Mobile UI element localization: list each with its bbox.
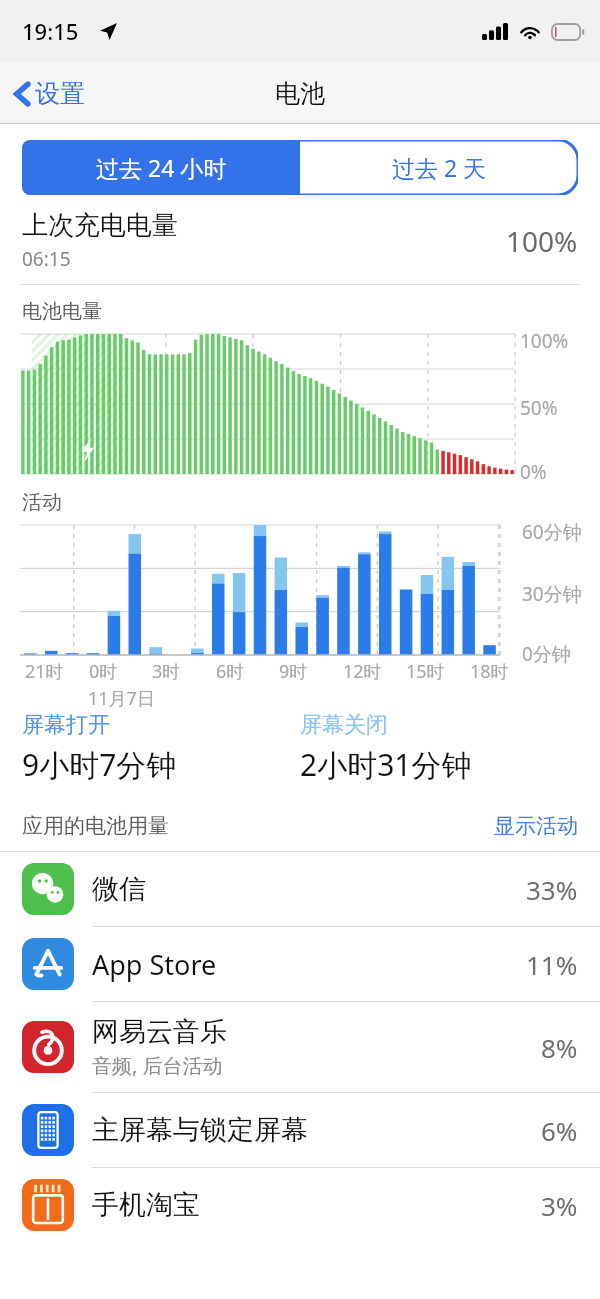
staticText: 9时 bbox=[279, 659, 308, 684]
staticText: 应用的电池用量 bbox=[22, 813, 494, 839]
staticText: 12时 bbox=[343, 659, 382, 684]
staticText: 18时 bbox=[470, 659, 509, 684]
staticText: 11月7日 bbox=[88, 686, 155, 711]
staticText: 9小时7分钟 bbox=[22, 744, 177, 785]
other: WeChat bbox=[22, 863, 74, 915]
staticText: 100% bbox=[506, 222, 578, 260]
staticText: 设置 bbox=[35, 78, 85, 109]
staticText: 3时 bbox=[152, 659, 181, 684]
staticText: 6时 bbox=[216, 659, 245, 684]
staticText: 0时 bbox=[89, 659, 118, 684]
button[interactable]: 过去 2 天 bbox=[300, 140, 578, 195]
staticText: 上次充电电量 bbox=[22, 209, 178, 242]
button[interactable]: Taobao bbox=[0, 1168, 600, 1242]
button[interactable]: 过去 24 小时 bbox=[22, 140, 300, 195]
staticText: App Store bbox=[92, 946, 217, 983]
staticText: 11% bbox=[526, 947, 578, 982]
staticText: 电池电量 bbox=[22, 299, 102, 324]
button[interactable]: Home and Lock Screen bbox=[0, 1093, 600, 1167]
other: Home and Lock Screen bbox=[22, 1104, 74, 1156]
staticText: 网易云音乐 bbox=[92, 1015, 227, 1049]
staticText: 3% bbox=[541, 1188, 578, 1223]
staticText: 0分钟 bbox=[522, 641, 571, 667]
staticText: 主屏幕与锁定屏幕 bbox=[92, 1113, 308, 1147]
staticText: 音频, 后台活动 bbox=[92, 1052, 223, 1079]
staticText: 活动 bbox=[22, 490, 62, 515]
staticText: 33% bbox=[526, 872, 578, 907]
other: NetEase Music bbox=[22, 1021, 74, 1073]
staticText: 50% bbox=[520, 395, 558, 421]
staticText: 6% bbox=[541, 1113, 578, 1148]
other: App Store bbox=[22, 938, 74, 990]
staticText: 手机淘宝 bbox=[92, 1188, 200, 1222]
staticText: 屏幕打开 bbox=[22, 711, 110, 739]
staticText: 21时 bbox=[25, 659, 64, 684]
staticText: 过去 24 小时 bbox=[96, 152, 227, 183]
button[interactable]: NetEase Music bbox=[0, 1002, 600, 1092]
button[interactable]: App Store bbox=[0, 927, 600, 1001]
staticText: 0% bbox=[520, 459, 547, 485]
staticText: 屏幕关闭 bbox=[300, 711, 388, 739]
staticText: 微信 bbox=[92, 872, 146, 906]
staticText: 过去 2 天 bbox=[392, 152, 487, 183]
button[interactable]: WeChat bbox=[0, 852, 600, 926]
other: Taobao bbox=[22, 1179, 74, 1231]
staticText: 100% bbox=[520, 328, 569, 354]
staticText: 06:15 bbox=[22, 246, 71, 272]
staticText: 15时 bbox=[406, 659, 445, 684]
staticText: 电池 bbox=[275, 78, 325, 109]
staticText: 2小时31分钟 bbox=[300, 744, 472, 785]
staticText: 60分钟 bbox=[522, 519, 582, 545]
staticText: 8% bbox=[541, 1030, 578, 1065]
button[interactable]: 显示活动 bbox=[494, 813, 578, 839]
staticText: 19:15 bbox=[22, 16, 79, 46]
staticText: 显示活动 bbox=[494, 813, 578, 839]
button[interactable]: 设置 bbox=[0, 70, 95, 117]
staticText: 30分钟 bbox=[522, 581, 582, 607]
